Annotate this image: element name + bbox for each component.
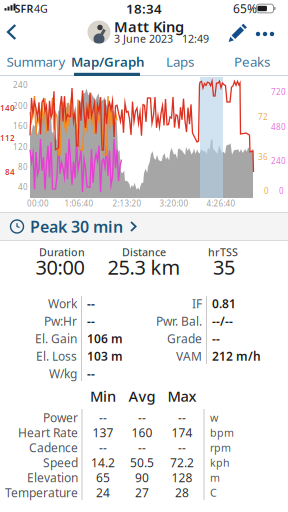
- staticText: 28: [175, 484, 189, 500]
- staticText: 35: [213, 254, 235, 280]
- staticText: C: [210, 485, 217, 500]
- staticText: 72.2: [170, 454, 194, 470]
- staticText: Peak 30 min: [30, 216, 123, 237]
- staticText: Map/Graph: [71, 53, 145, 70]
- staticText: 4:26:40: [206, 198, 235, 209]
- button[interactable]: Back: [4, 20, 24, 44]
- staticText: 240: [13, 80, 28, 90]
- staticText: Cadence: [29, 439, 78, 455]
- staticText: Elevation: [27, 469, 78, 485]
- staticText: 84: [5, 167, 15, 177]
- staticText: 128: [171, 469, 192, 485]
- staticText: w: [210, 410, 218, 425]
- staticText: 3 June 2023 12:49: [114, 31, 209, 46]
- staticText: --: [87, 313, 95, 329]
- staticText: Duration: [39, 245, 85, 259]
- button[interactable]: Map/Graph: [65, 48, 151, 75]
- button[interactable]: Summary: [0, 48, 72, 75]
- staticText: 2:13:20: [112, 198, 141, 209]
- staticText: Grade: [167, 330, 202, 346]
- staticText: 103 m: [87, 348, 123, 364]
- staticText: Peaks: [234, 53, 270, 70]
- button[interactable]: Peaks: [216, 48, 288, 75]
- staticText: 36: [258, 152, 268, 162]
- staticText: --: [178, 409, 186, 425]
- staticText: W/kg: [49, 365, 77, 381]
- staticText: --: [87, 365, 95, 381]
- staticText: Min: [90, 386, 116, 406]
- staticText: 65: [96, 469, 110, 485]
- staticText: hrTSS: [208, 245, 238, 259]
- staticText: Summary: [6, 53, 65, 70]
- staticText: 14.2: [91, 454, 115, 470]
- staticText: --: [99, 409, 107, 425]
- staticText: 200: [13, 101, 28, 111]
- staticText: El. Gain: [35, 330, 77, 346]
- staticText: 174: [171, 424, 192, 440]
- staticText: 160: [131, 424, 152, 440]
- staticText: VAM: [176, 348, 202, 364]
- staticText: Matt King: [114, 17, 184, 36]
- staticText: 212 m/h: [212, 348, 261, 364]
- staticText: Laps: [166, 53, 194, 70]
- staticText: 137: [92, 424, 113, 440]
- staticText: 65%: [233, 0, 257, 16]
- staticText: m: [210, 470, 220, 485]
- staticText: bpm: [210, 425, 234, 440]
- staticText: El. Loss: [36, 348, 77, 364]
- staticText: Temperature: [5, 484, 78, 500]
- staticText: Heart Rate: [18, 424, 78, 440]
- staticText: 720: [271, 87, 286, 97]
- staticText: 25.3 km: [107, 254, 180, 280]
- staticText: 120: [13, 142, 28, 152]
- staticText: 160: [13, 121, 28, 131]
- button[interactable]: Peak 30 min: [0, 212, 288, 241]
- staticText: Pwr. Bal.: [156, 313, 202, 329]
- staticText: --: [99, 439, 107, 455]
- staticText: 80: [18, 162, 28, 172]
- staticText: 140: [0, 103, 15, 113]
- staticText: --: [138, 439, 146, 455]
- staticText: 240: [271, 156, 286, 166]
- staticText: 00:00: [27, 198, 49, 209]
- staticText: 24: [96, 484, 110, 500]
- staticText: --: [212, 330, 220, 346]
- staticText: 72: [258, 112, 268, 122]
- staticText: --: [138, 409, 146, 425]
- staticText: 112: [0, 133, 15, 143]
- staticText: Avg: [128, 386, 155, 406]
- staticText: 27: [135, 484, 149, 500]
- staticText: 18:34: [126, 0, 162, 17]
- staticText: 0: [264, 186, 269, 196]
- staticText: --: [178, 439, 186, 455]
- staticText: 4G: [34, 1, 48, 16]
- staticText: --/--: [212, 313, 233, 329]
- staticText: 90: [135, 469, 149, 485]
- staticText: rpm: [210, 440, 231, 455]
- staticText: 0.81: [212, 295, 236, 311]
- staticText: SFR: [14, 1, 33, 16]
- staticText: 50.5: [130, 454, 154, 470]
- staticText: 1:06:40: [64, 198, 93, 209]
- staticText: 40: [18, 182, 28, 192]
- staticText: IF: [192, 295, 202, 311]
- button[interactable]: Laps: [144, 48, 216, 75]
- button[interactable]: Edit: [224, 19, 250, 45]
- staticText: kph: [210, 455, 230, 470]
- staticText: 30:00: [35, 254, 84, 280]
- staticText: 480: [271, 122, 286, 132]
- staticText: 106 m: [87, 330, 123, 346]
- staticText: --: [87, 295, 95, 311]
- staticText: 0: [279, 186, 284, 196]
- staticText: Work: [48, 295, 77, 311]
- button[interactable]: More: [251, 23, 279, 45]
- staticText: 3:20:00: [159, 198, 188, 209]
- staticText: Pw:Hr: [44, 313, 77, 329]
- staticText: Power: [43, 409, 78, 425]
- staticText: Distance: [122, 245, 166, 259]
- staticText: Speed: [43, 454, 78, 470]
- staticText: Max: [167, 386, 196, 406]
